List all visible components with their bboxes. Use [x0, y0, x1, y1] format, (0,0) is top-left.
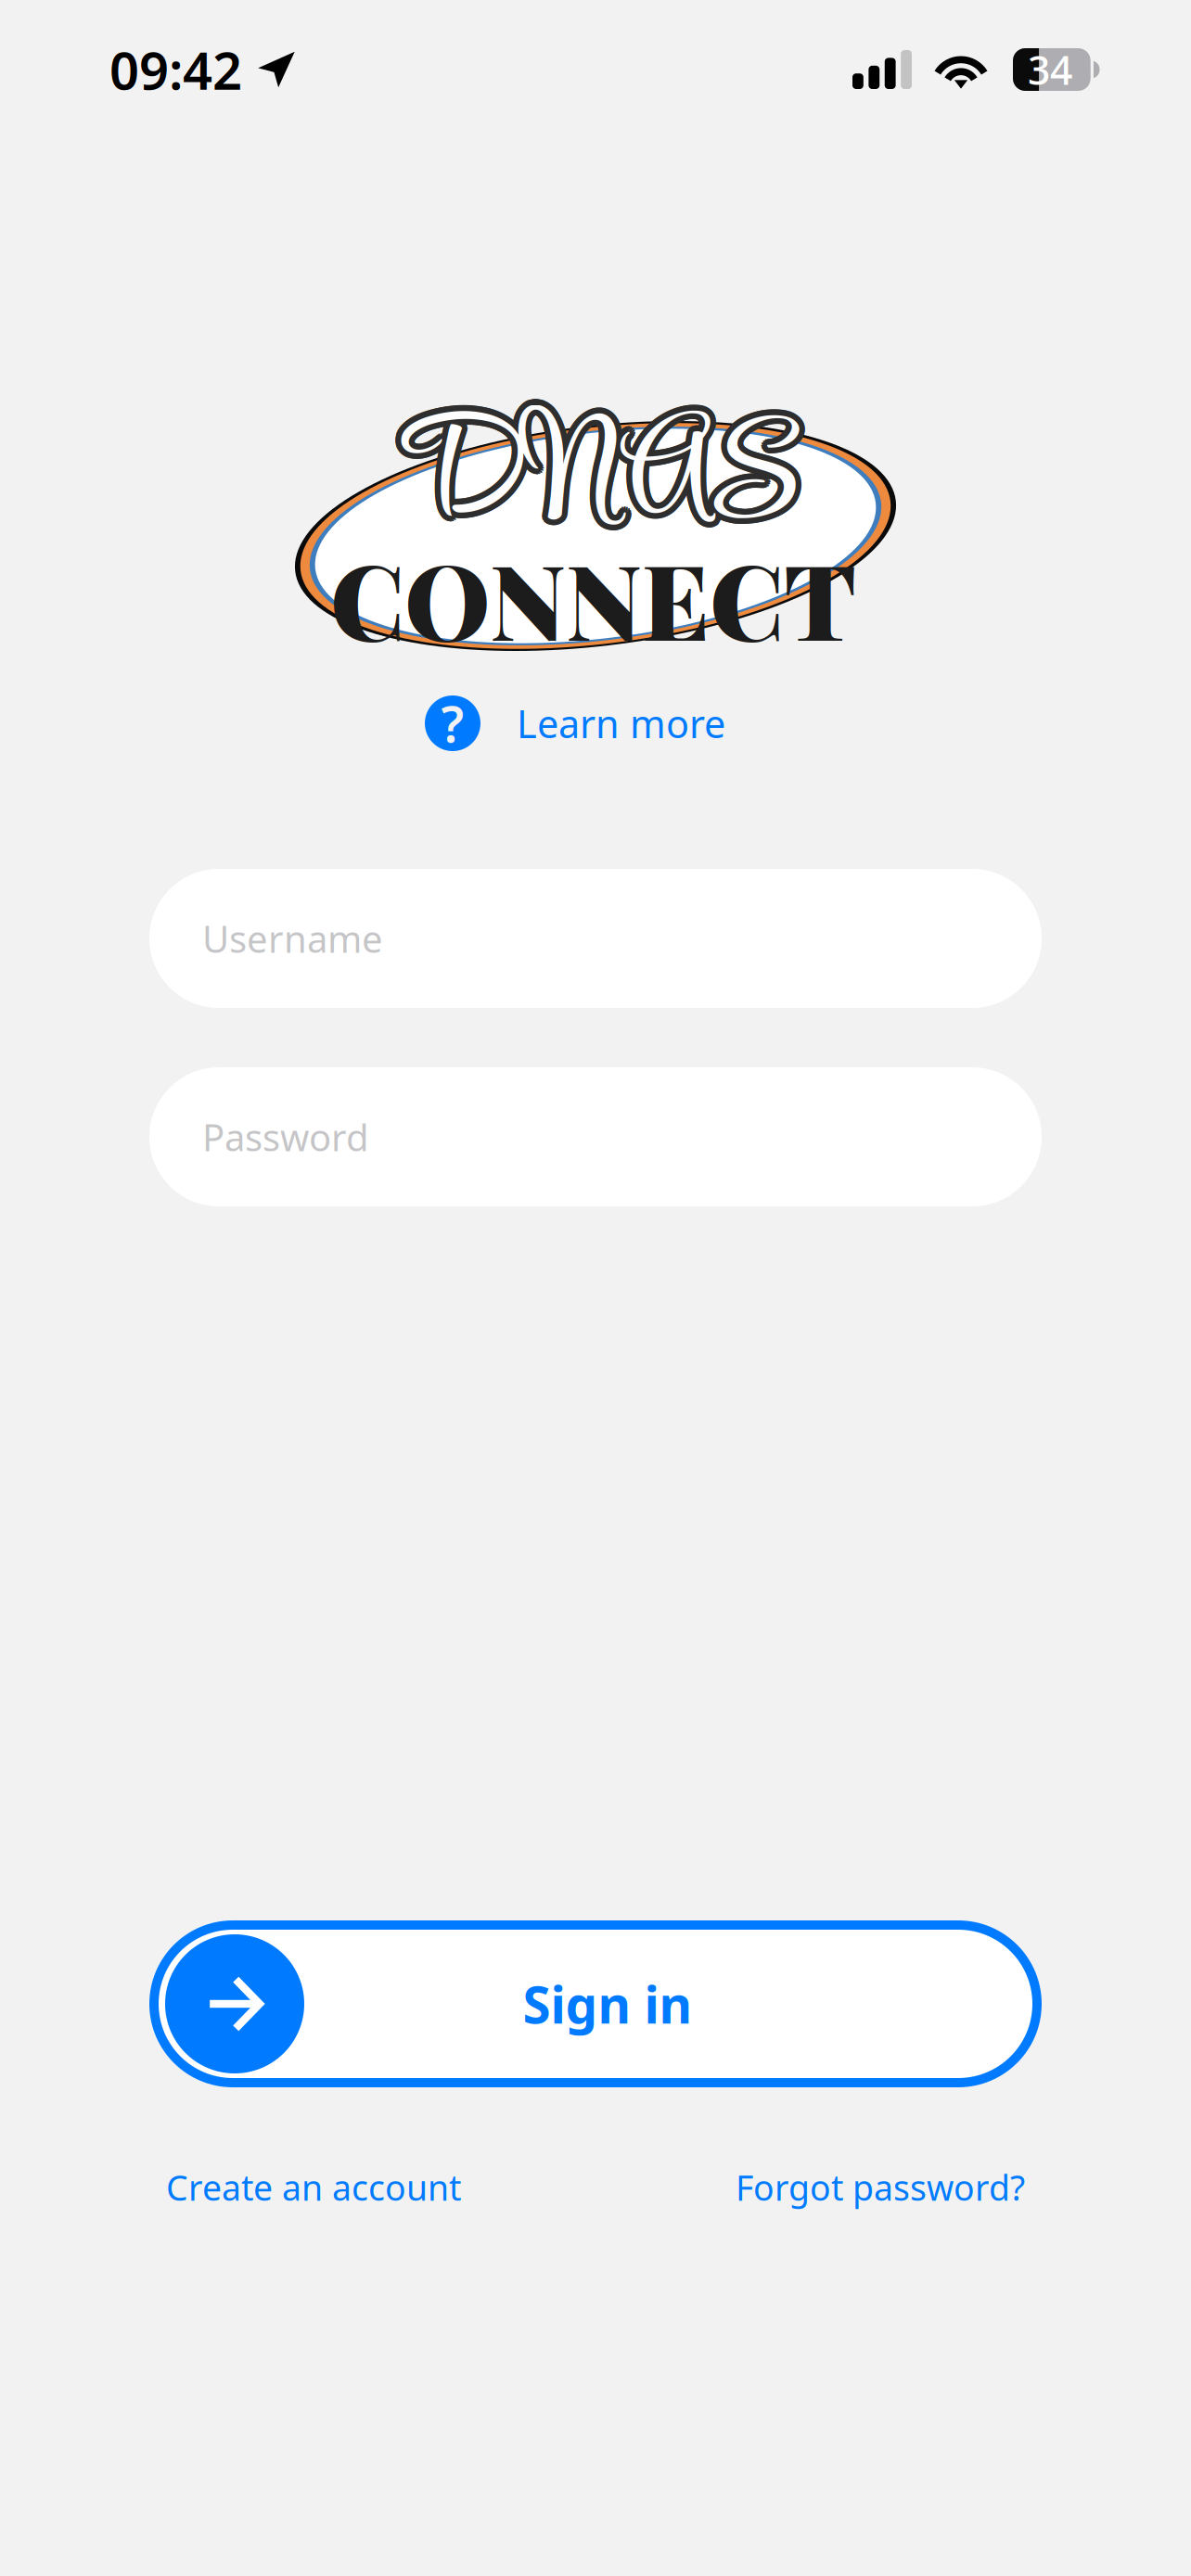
- staticText: DNAS: [401, 379, 797, 591]
- staticText: CONNECT: [330, 528, 856, 667]
- staticText: DNAS: [401, 373, 797, 585]
- staticText: Password: [202, 1112, 369, 1161]
- button[interactable]: ?: [445, 690, 746, 757]
- staticText: Learn more: [517, 698, 725, 749]
- staticText: DNAS: [403, 378, 799, 591]
- staticText: ?: [441, 690, 464, 756]
- staticText: 34: [1028, 43, 1072, 96]
- staticText: Forgot password?: [736, 2164, 1025, 2210]
- staticText: 09:42: [109, 35, 242, 104]
- staticText: DNAS: [407, 373, 803, 585]
- staticText: DNAS: [403, 367, 799, 580]
- staticText: DNAS: [396, 375, 792, 587]
- staticText: DNAS: [396, 370, 792, 583]
- staticText: DNAS: [405, 369, 801, 581]
- staticText: DNAS: [397, 377, 793, 589]
- staticText: DNAS: [405, 377, 801, 589]
- staticText: DNAS: [397, 369, 793, 581]
- button[interactable]: Forgot password?: [736, 2164, 1025, 2210]
- staticText: DNAS: [401, 367, 797, 579]
- staticText: DNAS: [395, 373, 791, 585]
- staticText: Sign in: [523, 1970, 692, 2038]
- staticText: Username: [202, 914, 383, 963]
- button[interactable]: Sign in: [0, 1920, 1191, 2087]
- staticText: DNAS: [399, 367, 795, 580]
- staticText: DNAS: [399, 378, 795, 591]
- staticText: Create an account: [166, 2164, 461, 2210]
- staticText: DNAS: [407, 370, 803, 583]
- button[interactable]: Create an account: [166, 2164, 461, 2210]
- staticText: DNAS: [407, 375, 803, 587]
